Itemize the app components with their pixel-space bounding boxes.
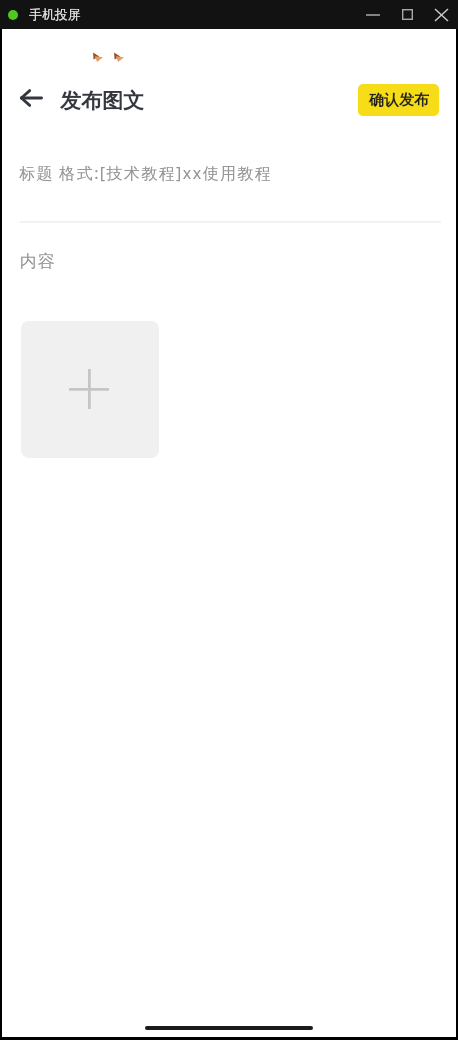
staticText: 手机投屏	[29, 6, 81, 22]
button[interactable]: Minimize	[352, 0, 394, 29]
staticText: 内容	[19, 251, 55, 272]
button[interactable]: 标题 格式:[技术教程]xx使用教程	[20, 151, 441, 221]
button[interactable]: 确认发布	[358, 84, 439, 116]
button[interactable]: Back	[14, 81, 48, 115]
button[interactable]: 内容	[20, 225, 441, 315]
staticText: 标题 格式:[技术教程]xx使用教程	[19, 162, 273, 184]
staticText: 确认发布	[369, 91, 429, 110]
button[interactable]: Add image	[21, 321, 159, 458]
staticText: 发布图文	[60, 88, 144, 114]
button[interactable]: Maximize	[392, 0, 422, 29]
button[interactable]: Close	[426, 0, 456, 29]
